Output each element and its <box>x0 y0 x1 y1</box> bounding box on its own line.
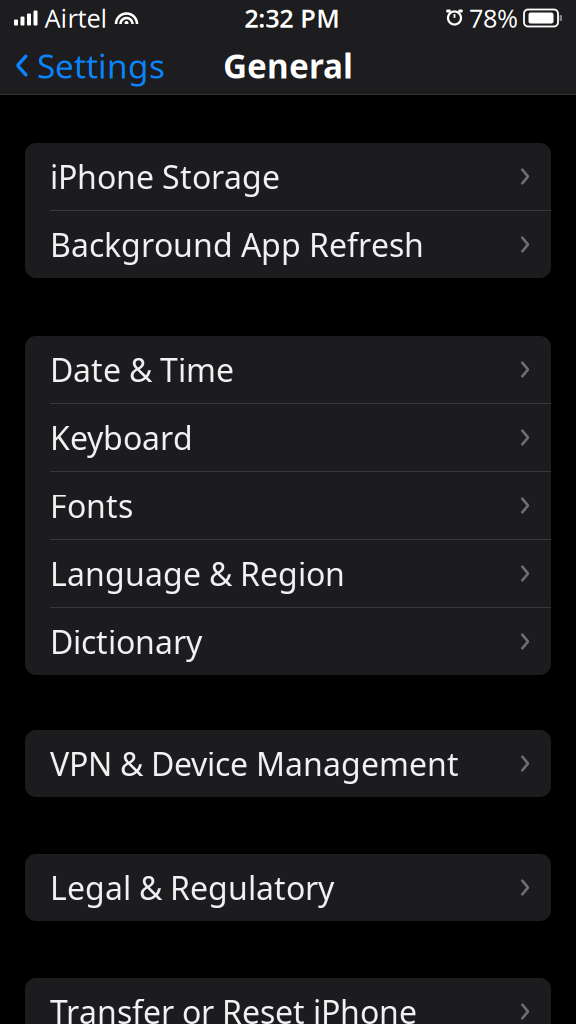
staticText: Date & Time <box>50 348 234 391</box>
staticText: General <box>223 43 353 88</box>
button[interactable]: Keyboard <box>25 404 551 472</box>
staticText: Settings <box>37 43 165 88</box>
staticText: Language & Region <box>50 552 345 595</box>
button[interactable]: Transfer or Reset iPhone <box>25 978 551 1024</box>
button[interactable]: VPN & Device Management <box>25 730 551 797</box>
staticText: iPhone Storage <box>50 155 280 198</box>
staticText: Dictionary <box>50 620 202 663</box>
button[interactable]: Settings <box>0 35 165 96</box>
staticText: Airtel <box>44 1 107 35</box>
staticText: 2:32 PM <box>244 1 340 35</box>
staticText: Transfer or Reset iPhone <box>50 990 417 1024</box>
button[interactable]: Date & Time <box>25 336 551 404</box>
button[interactable]: Legal & Regulatory <box>25 854 551 921</box>
staticText: Fonts <box>50 484 133 527</box>
staticText: Legal & Regulatory <box>50 866 334 909</box>
staticText: VPN & Device Management <box>50 742 459 785</box>
button[interactable]: iPhone Storage <box>25 143 551 211</box>
staticText: Background App Refresh <box>50 223 424 266</box>
staticText: 78% <box>469 1 518 35</box>
staticText: Keyboard <box>50 416 193 459</box>
button[interactable]: Background App Refresh <box>25 211 551 278</box>
button[interactable]: Language & Region <box>25 540 551 608</box>
button[interactable]: Fonts <box>25 472 551 540</box>
button[interactable]: Dictionary <box>25 608 551 675</box>
